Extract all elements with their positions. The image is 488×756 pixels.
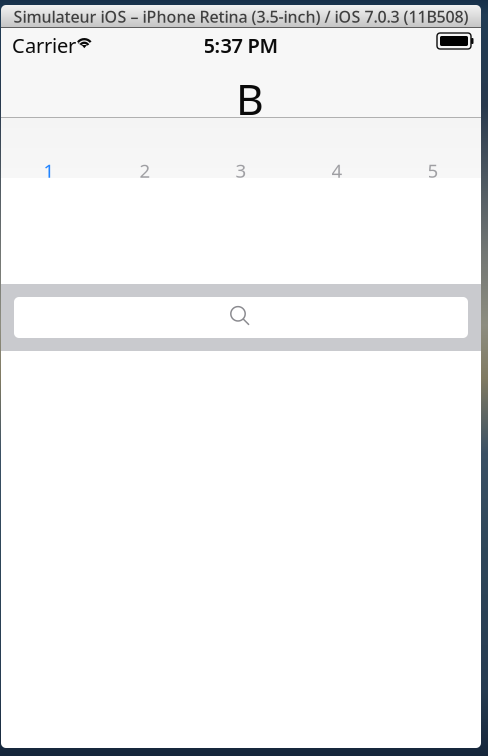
button[interactable]: Search [14, 297, 468, 338]
staticText: 1 [43, 158, 54, 183]
staticText: 2 [139, 158, 150, 183]
button[interactable]: 3 [193, 118, 289, 178]
button[interactable]: 1 [1, 118, 97, 178]
staticText: Simulateur iOS – iPhone Retina (3.5-inch… [13, 6, 468, 27]
button[interactable]: 2 [97, 118, 193, 178]
staticText: B [236, 70, 264, 127]
staticText: 5:37 PM [203, 32, 278, 59]
staticText: 3 [235, 158, 246, 183]
button[interactable]: 4 [289, 118, 385, 178]
staticText: 4 [331, 158, 342, 183]
button[interactable]: 5 [385, 118, 481, 178]
staticText: Carrier [12, 32, 76, 59]
staticText: 5 [427, 158, 438, 183]
